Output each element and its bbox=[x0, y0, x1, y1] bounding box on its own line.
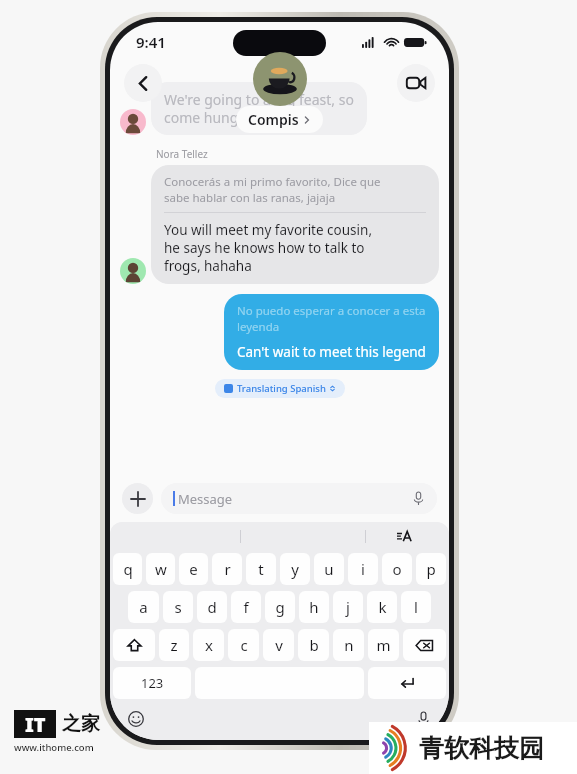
staticText: h bbox=[309, 597, 319, 617]
button[interactable]: s bbox=[163, 591, 193, 623]
button[interactable]: f bbox=[231, 591, 261, 623]
staticText: z bbox=[170, 635, 178, 655]
button[interactable]: Backspace bbox=[403, 629, 446, 661]
button[interactable]: Emoji keyboard bbox=[124, 707, 148, 731]
button[interactable]: m bbox=[368, 629, 399, 661]
staticText: You will meet my favorite cousin, he say… bbox=[164, 221, 373, 275]
staticText: We're going to a big feast, so come hung… bbox=[164, 90, 354, 127]
button[interactable]: p bbox=[416, 553, 446, 585]
button[interactable]: v bbox=[263, 629, 294, 661]
button[interactable]: h bbox=[299, 591, 329, 623]
staticText: Conocerás a mi primo favorito, Dice que … bbox=[164, 174, 381, 205]
button[interactable]: Dictation bbox=[411, 707, 435, 731]
staticText: 青软科技园 bbox=[419, 733, 544, 764]
staticText: No puedo esperar a conocer a esta leyend… bbox=[237, 303, 426, 334]
button[interactable]: Formatting bbox=[366, 522, 443, 550]
staticText: c bbox=[240, 635, 248, 655]
staticText: Message bbox=[178, 490, 412, 508]
staticText: q bbox=[123, 559, 133, 579]
staticText: y bbox=[291, 559, 299, 579]
button[interactable]: z bbox=[159, 629, 189, 661]
button[interactable]: Back bbox=[124, 64, 162, 102]
staticText: d bbox=[207, 597, 217, 617]
button[interactable]: w bbox=[146, 553, 175, 585]
button[interactable]: Message bbox=[161, 483, 437, 514]
staticText: v bbox=[275, 635, 283, 655]
staticText: r bbox=[224, 559, 231, 579]
button[interactable]: Shift bbox=[113, 629, 155, 661]
button[interactable]: j bbox=[333, 591, 363, 623]
staticText: e bbox=[189, 559, 198, 579]
button[interactable]: g bbox=[265, 591, 295, 623]
button[interactable]: e bbox=[179, 553, 208, 585]
staticText: m bbox=[376, 635, 391, 655]
button[interactable]: Compis bbox=[236, 106, 323, 133]
button[interactable]: Group photo bbox=[253, 52, 307, 106]
button[interactable]: t bbox=[246, 553, 276, 585]
button[interactable]: q bbox=[113, 553, 142, 585]
staticText: j bbox=[346, 597, 350, 617]
staticText: Translating Spanish bbox=[237, 382, 326, 395]
staticText: Nora Tellez bbox=[156, 147, 208, 161]
staticText: a bbox=[139, 597, 148, 617]
button[interactable]: FaceTime video call bbox=[397, 64, 435, 102]
button[interactable]: l bbox=[401, 591, 431, 623]
staticText: k bbox=[378, 597, 387, 617]
button[interactable]: i bbox=[348, 553, 378, 585]
button[interactable]: c bbox=[228, 629, 259, 661]
staticText: w bbox=[155, 559, 167, 579]
staticText: n bbox=[344, 635, 354, 655]
button[interactable]: Contact avatar bbox=[120, 109, 146, 135]
button[interactable]: a bbox=[128, 591, 159, 623]
staticText: o bbox=[392, 559, 402, 579]
button[interactable]: k bbox=[367, 591, 397, 623]
button[interactable]: u bbox=[314, 553, 344, 585]
staticText: IT bbox=[25, 711, 46, 738]
button[interactable]: n bbox=[333, 629, 364, 661]
staticText: f bbox=[243, 597, 249, 617]
staticText: s bbox=[174, 597, 182, 617]
staticText: 9:41 bbox=[136, 32, 166, 52]
button[interactable]: b bbox=[298, 629, 329, 661]
staticText: x bbox=[205, 635, 213, 655]
staticText: b bbox=[309, 635, 319, 655]
staticText: u bbox=[324, 559, 334, 579]
button[interactable]: Return bbox=[368, 667, 446, 699]
button[interactable]: x bbox=[193, 629, 224, 661]
button[interactable]: d bbox=[197, 591, 227, 623]
staticText: www.ithome.com bbox=[14, 741, 94, 754]
staticText: Can't wait to meet this legend bbox=[237, 343, 426, 361]
staticText: l bbox=[414, 597, 418, 617]
staticText: 123 bbox=[141, 674, 164, 692]
button[interactable]: y bbox=[280, 553, 310, 585]
button[interactable]: 123 bbox=[113, 667, 191, 699]
button[interactable]: Add attachment bbox=[122, 483, 153, 514]
staticText: g bbox=[275, 597, 285, 617]
staticText: p bbox=[426, 559, 436, 579]
button[interactable]: o bbox=[382, 553, 412, 585]
staticText: 之家 bbox=[62, 712, 100, 736]
button[interactable]: Translating Spanish bbox=[215, 379, 345, 398]
button[interactable]: Contact avatar bbox=[120, 258, 146, 284]
button[interactable]: r bbox=[212, 553, 242, 585]
staticText: Compis bbox=[248, 110, 299, 129]
staticText: i bbox=[361, 559, 365, 579]
staticText: t bbox=[258, 559, 264, 579]
